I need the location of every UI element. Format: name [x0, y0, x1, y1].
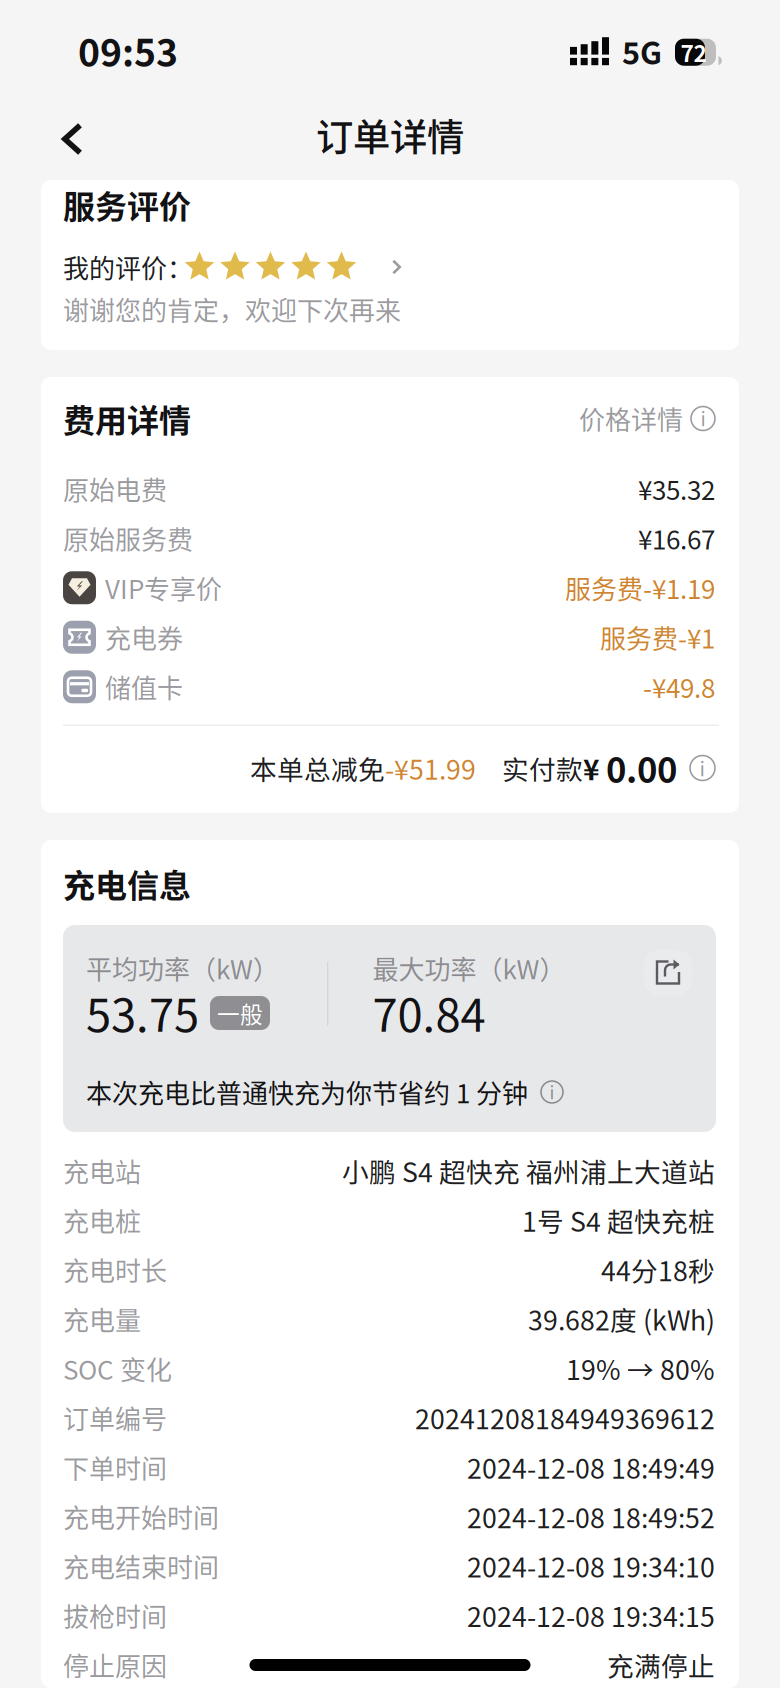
staticText: 70.84	[372, 979, 485, 1045]
staticText: 充电开始时间	[63, 1498, 219, 1535]
staticText: i	[549, 1079, 554, 1104]
staticText: 服务费-¥1	[600, 618, 715, 656]
button[interactable]: 价格详情	[579, 400, 715, 437]
staticText: 充电时长	[63, 1251, 167, 1288]
staticText: -¥51.99	[385, 749, 476, 787]
staticText: 充电券	[105, 618, 183, 656]
staticText: 本单总减免	[250, 749, 385, 787]
staticText: 停止原因	[63, 1646, 167, 1683]
staticText: 最大功率（kW）	[372, 949, 565, 987]
staticText: 服务费-¥1.19	[565, 569, 715, 606]
staticText: 09:53	[78, 23, 178, 78]
staticText: 本次充电比普通快充为你节省约 1 分钟	[86, 1073, 528, 1111]
staticText: 充电站	[63, 1152, 141, 1189]
staticText: 平均功率（kW）	[86, 949, 279, 987]
staticText: i	[700, 404, 705, 432]
staticText: 19% → 80%	[566, 1349, 715, 1388]
staticText: 72	[680, 36, 706, 69]
staticText: ¥35.32	[638, 470, 715, 507]
staticText: 充电桩	[63, 1201, 141, 1239]
staticText: 一般	[217, 997, 263, 1029]
staticText: 充电结束时间	[63, 1547, 219, 1585]
staticText: 2024-12-08 18:49:49	[467, 1448, 715, 1486]
staticText: 我的评价：	[63, 248, 193, 286]
staticText: 小鹏 S4 超快充 福州浦上大道站	[342, 1151, 715, 1190]
staticText: 储值卡	[105, 668, 183, 705]
staticText: 2024-12-08 19:34:15	[467, 1596, 715, 1635]
staticText: 20241208184949369612	[415, 1398, 715, 1437]
staticText: ¥	[583, 748, 600, 788]
staticText: 44分18秒	[601, 1250, 715, 1289]
staticText: 充电量	[63, 1300, 141, 1338]
staticText: 下单时间	[63, 1448, 167, 1486]
button[interactable]: Back	[36, 103, 108, 175]
button[interactable]: Share	[643, 947, 693, 997]
staticText: 实付款	[502, 749, 583, 787]
button[interactable]: 我的评价：	[63, 251, 715, 283]
staticText: 2024-12-08 18:49:52	[467, 1497, 715, 1536]
staticText: 价格详情	[579, 400, 683, 437]
staticText: 订单详情	[316, 108, 464, 162]
staticText: 充满停止	[607, 1645, 715, 1684]
staticText: ¥16.67	[638, 519, 715, 557]
staticText: 5G	[622, 29, 662, 73]
staticText: 拔枪时间	[63, 1596, 167, 1634]
staticText: 原始电费	[63, 470, 167, 507]
staticText: 53.75	[86, 979, 199, 1045]
staticText: 1号 S4 超快充桩	[522, 1201, 715, 1239]
staticText: 服务评价	[63, 181, 191, 228]
staticText: 订单编号	[63, 1399, 167, 1436]
staticText: 谢谢您的肯定，欢迎下次再来	[63, 290, 401, 328]
staticText: VIP专享价	[105, 569, 222, 606]
staticText: -¥49.8	[643, 668, 715, 705]
staticText: 原始服务费	[63, 519, 193, 557]
staticText: i	[699, 753, 705, 782]
staticText: 充电信息	[63, 860, 191, 907]
staticText: 费用详情	[63, 395, 191, 442]
staticText: 0.00	[606, 743, 677, 793]
staticText: 2024-12-08 19:34:10	[467, 1547, 715, 1585]
staticText: 39.682度 (kWh)	[528, 1300, 715, 1338]
staticText: SOC 变化	[63, 1349, 172, 1387]
